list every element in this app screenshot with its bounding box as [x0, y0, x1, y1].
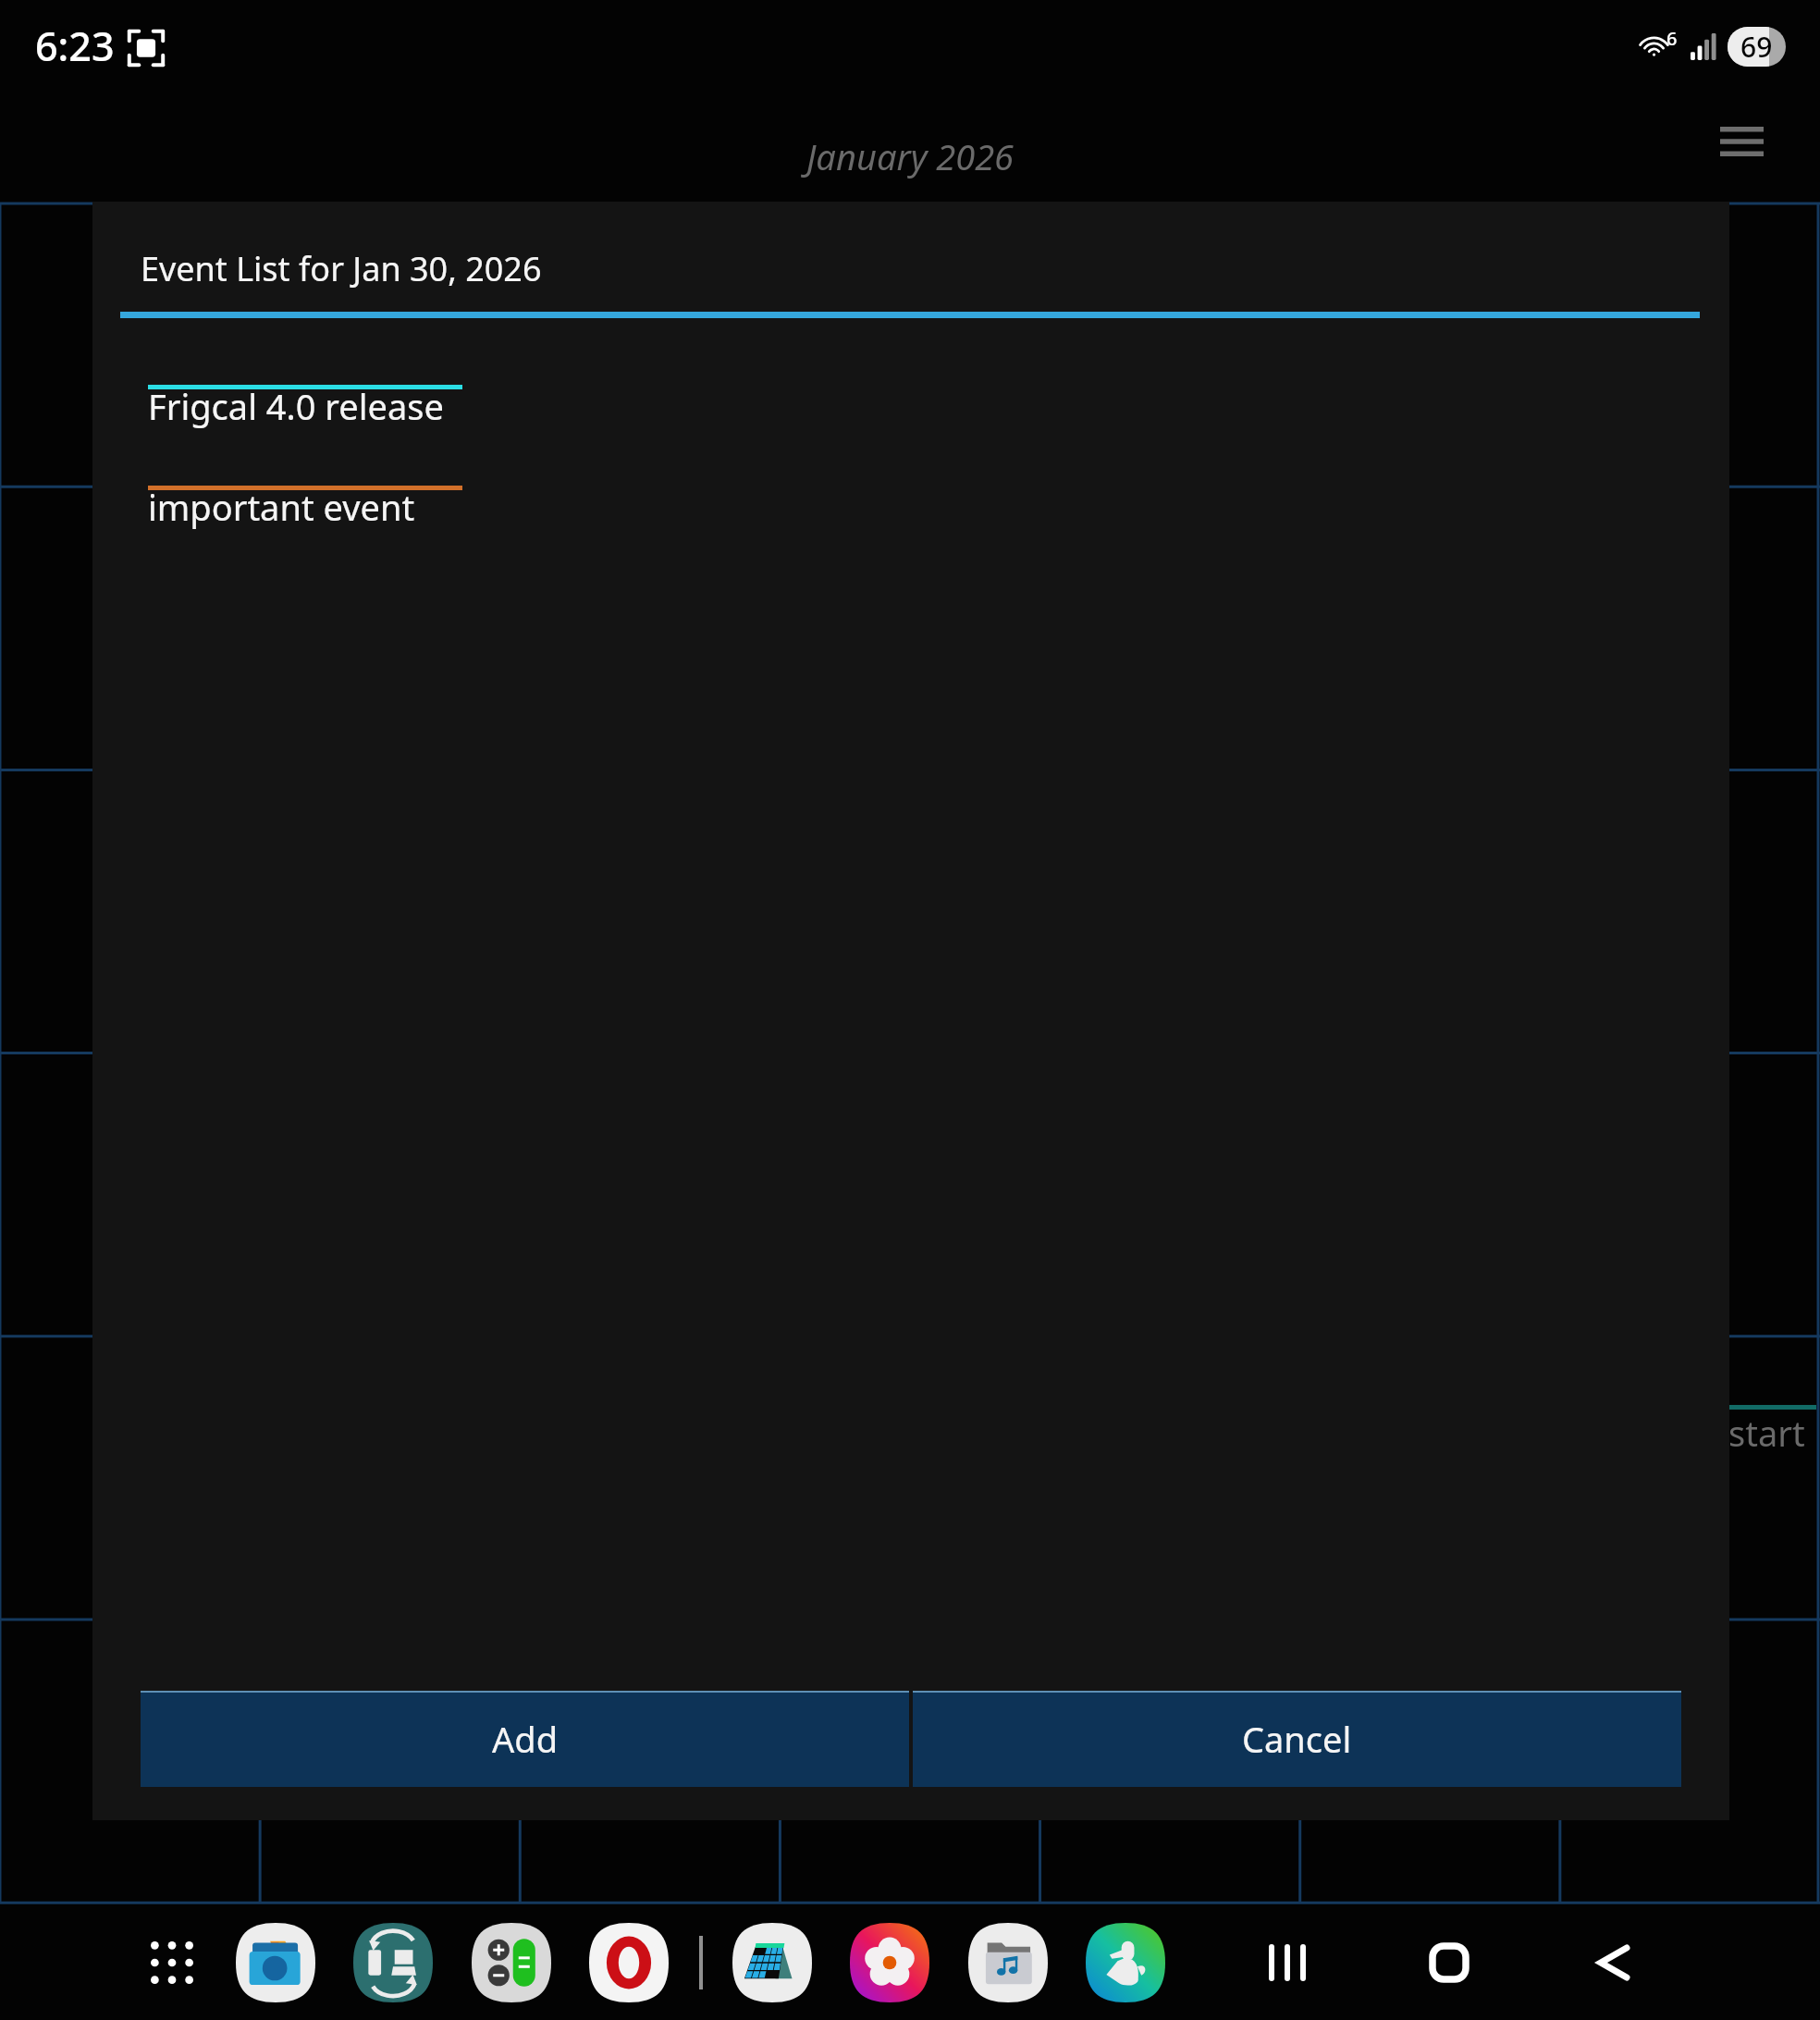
- button[interactable]: CX File Explorer: [236, 1923, 315, 2002]
- staticText: Cancel: [1242, 1715, 1352, 1763]
- staticText: 69: [1740, 28, 1773, 66]
- button[interactable]: Calculator: [472, 1923, 551, 2002]
- button[interactable]: Recents: [1254, 1929, 1321, 1996]
- button[interactable]: Cancel: [913, 1691, 1681, 1787]
- button[interactable]: important event: [148, 483, 462, 546]
- staticText: 6:23: [35, 18, 115, 73]
- button[interactable]: Music: [968, 1923, 1048, 2002]
- staticText: Add: [492, 1715, 559, 1763]
- button[interactable]: Add: [141, 1691, 909, 1787]
- button[interactable]: Calendar: [732, 1923, 812, 2002]
- staticText: start: [1728, 1409, 1805, 1457]
- button[interactable]: Menu: [1700, 109, 1783, 174]
- button[interactable]: Smart Switch: [353, 1923, 433, 2002]
- staticText: Event List for Jan 30, 2026: [141, 246, 542, 291]
- staticText: Frigcal 4.0 release: [148, 382, 444, 430]
- button[interactable]: Back: [1580, 1929, 1647, 1996]
- button[interactable]: Frigcal 4.0 release: [148, 382, 462, 445]
- staticText: January 2026: [806, 132, 1015, 180]
- button[interactable]: Home: [1416, 1929, 1482, 1996]
- button[interactable]: Opera: [589, 1923, 669, 2002]
- button[interactable]: Health: [1086, 1923, 1165, 2002]
- button[interactable]: Gallery: [850, 1923, 929, 2002]
- staticText: 6: [1666, 26, 1678, 51]
- button[interactable]: Apps: [133, 1924, 211, 2002]
- staticText: important event: [148, 483, 415, 531]
